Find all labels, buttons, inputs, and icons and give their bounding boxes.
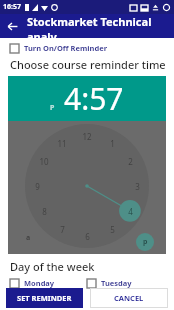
staticText: 9: [35, 181, 40, 192]
button[interactable]: Monday: [10, 278, 87, 288]
staticText: 7: [60, 224, 65, 235]
staticText: a: [26, 233, 31, 243]
staticText: 12: [82, 131, 92, 142]
staticText: 5: [110, 224, 115, 235]
staticText: 10: [39, 156, 49, 167]
staticText: 3: [135, 181, 140, 192]
staticText: 16:57: [3, 2, 21, 12]
button[interactable]: CANCEL: [90, 288, 168, 308]
button[interactable]: Turn On/Off Reminder: [10, 43, 107, 53]
staticText: Monday: [24, 278, 55, 288]
button[interactable]: Tuesday: [87, 278, 164, 288]
button[interactable]: Back: [0, 14, 24, 38]
staticText: 8: [42, 206, 47, 217]
staticText: Stockmarket Technical analy.: [27, 14, 174, 38]
button[interactable]: SET REMINDER: [6, 288, 83, 308]
staticText: p: [143, 237, 148, 247]
staticText: SET REMINDER: [17, 293, 72, 303]
staticText: Choose course reminder time: [10, 57, 166, 72]
staticText: Day of the week: [10, 259, 95, 274]
staticText: 1: [110, 138, 115, 149]
staticText: 4:57: [64, 78, 124, 119]
button[interactable]: p: [136, 233, 154, 251]
staticText: Turn On/Off Reminder: [24, 43, 107, 53]
staticText: 4: [128, 206, 133, 217]
button[interactable]: P: [50, 103, 55, 113]
staticText: 11: [57, 138, 67, 149]
staticText: CANCEL: [114, 293, 144, 303]
button[interactable]: a: [20, 230, 36, 246]
staticText: 2: [128, 156, 133, 167]
staticText: Tuesday: [101, 278, 132, 288]
staticText: 6: [85, 231, 90, 242]
